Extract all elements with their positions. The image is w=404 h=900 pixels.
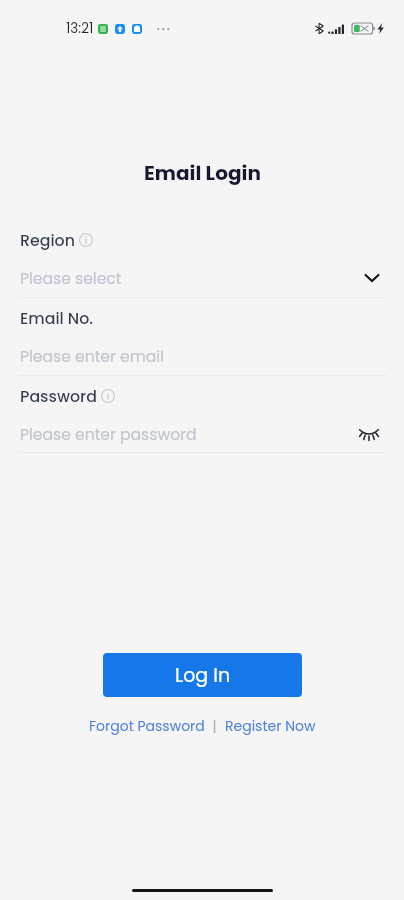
staticText: Email Login	[144, 159, 261, 185]
staticText: Forgot Password	[89, 716, 205, 736]
button[interactable]: Please select	[0, 266, 404, 292]
button[interactable]: Forgot Password	[89, 716, 205, 736]
staticText: 13:21	[66, 19, 94, 38]
staticText: Password	[20, 385, 97, 407]
staticText: Please enter email	[20, 346, 164, 368]
staticText: Log In	[175, 662, 231, 689]
staticText: |	[205, 716, 225, 736]
button[interactable]: Select region	[359, 265, 385, 291]
staticText: Please select	[20, 268, 122, 290]
button[interactable]: Show password	[356, 422, 382, 448]
button[interactable]: Register Now	[225, 716, 316, 736]
staticText: Register Now	[225, 716, 316, 736]
button[interactable]: Please enter email	[0, 344, 404, 370]
staticText: Region	[20, 229, 75, 251]
button[interactable]: Log In	[103, 653, 302, 697]
staticText: Email No.	[20, 307, 94, 329]
button[interactable]: Please enter password	[0, 422, 404, 448]
staticText: Please enter password	[20, 424, 197, 446]
